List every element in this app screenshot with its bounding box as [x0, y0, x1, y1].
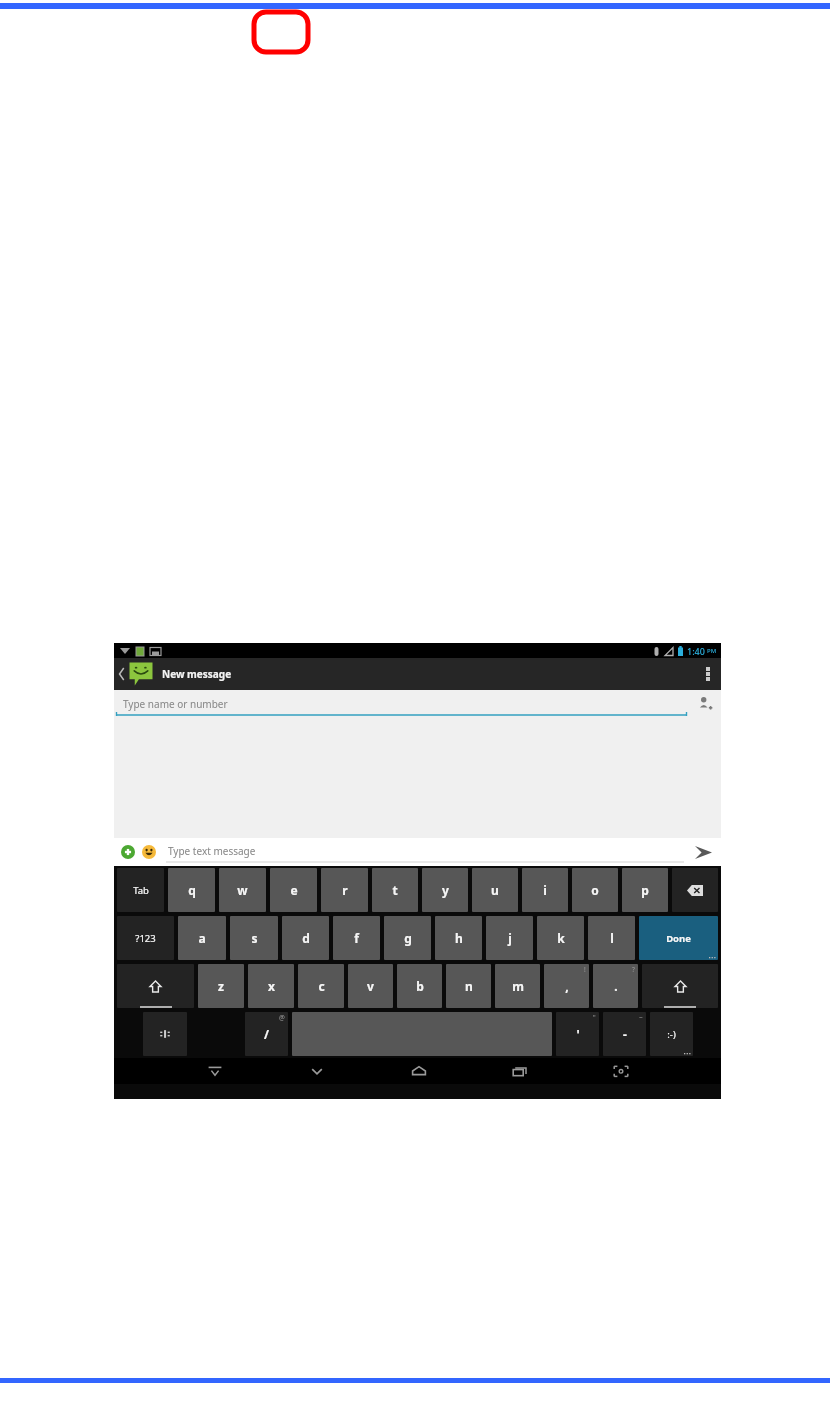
button[interactable]: ~	[603, 1012, 646, 1056]
staticText: g	[404, 930, 412, 946]
staticText: p	[641, 882, 649, 898]
staticText: f	[354, 930, 359, 946]
button[interactable]: o	[572, 868, 618, 912]
button[interactable]: h	[435, 916, 482, 960]
staticText: w	[237, 882, 248, 898]
button[interactable]: a	[178, 916, 226, 960]
staticText: PM	[707, 647, 717, 655]
button[interactable]: Recent apps	[469, 1058, 570, 1084]
button[interactable]: Shift	[117, 964, 194, 1008]
button[interactable]: ?123	[117, 916, 174, 960]
staticText: h	[455, 930, 463, 946]
button[interactable]: m	[495, 964, 540, 1008]
button[interactable]: z	[198, 964, 244, 1008]
staticText: t	[392, 882, 398, 898]
button[interactable]: r	[321, 868, 368, 912]
staticText: -	[623, 1026, 627, 1042]
staticText: n	[465, 978, 473, 994]
button[interactable]: Shift	[642, 964, 718, 1008]
button[interactable]: Voice input	[143, 1012, 187, 1056]
button[interactable]: x	[248, 964, 294, 1008]
staticText: 1:40	[687, 645, 705, 657]
button[interactable]: b	[397, 964, 442, 1008]
button[interactable]: Delete	[672, 868, 718, 912]
button[interactable]: l	[588, 916, 635, 960]
button[interactable]: n	[446, 964, 491, 1008]
button[interactable]: Tab	[117, 868, 164, 912]
button[interactable]: Screenshot	[570, 1058, 671, 1084]
button[interactable]: i	[522, 868, 568, 912]
staticText: Done	[666, 932, 691, 945]
staticText: u	[491, 882, 499, 898]
staticText: k	[557, 930, 565, 946]
staticText: b	[416, 978, 424, 994]
button[interactable]: q	[168, 868, 215, 912]
button[interactable]: t	[372, 868, 418, 912]
button[interactable]: Navigate up	[117, 661, 232, 687]
staticText: Type name or number	[123, 697, 228, 711]
button[interactable]: s	[230, 916, 278, 960]
button[interactable]: "	[556, 1012, 599, 1056]
staticText: Type text message	[168, 844, 256, 858]
button[interactable]: @	[245, 1012, 288, 1056]
button[interactable]: d	[282, 916, 329, 960]
staticText: z	[218, 978, 224, 994]
staticText: "	[593, 1013, 596, 1022]
button[interactable]: Add recipient	[689, 690, 721, 716]
staticText: j	[508, 930, 512, 946]
staticText: s	[251, 930, 258, 946]
button[interactable]: Home	[368, 1058, 469, 1084]
button[interactable]: Done	[639, 916, 718, 960]
staticText: ,	[565, 978, 569, 994]
staticText: New message	[162, 667, 232, 681]
button[interactable]: Send	[690, 840, 716, 864]
button[interactable]: Hide keyboard	[164, 1058, 266, 1084]
button[interactable]: y	[422, 868, 468, 912]
staticText: y	[442, 882, 449, 898]
staticText: ~	[639, 1013, 643, 1022]
button[interactable]: Attach	[119, 843, 137, 861]
button[interactable]: j	[486, 916, 533, 960]
staticText: c	[318, 978, 325, 994]
button[interactable]: :-)	[650, 1012, 693, 1056]
button[interactable]: Type text message	[166, 838, 684, 866]
button[interactable]: f	[333, 916, 380, 960]
staticText: /	[264, 1026, 269, 1042]
button[interactable]: Insert emoji	[140, 843, 158, 861]
button[interactable]: Back	[266, 1058, 368, 1084]
button[interactable]: Type name or number	[114, 690, 689, 716]
button[interactable]: More options	[695, 658, 721, 690]
button[interactable]: p	[622, 868, 668, 912]
button[interactable]: u	[472, 868, 518, 912]
staticText: a	[198, 930, 206, 946]
staticText: :-)	[667, 1028, 676, 1041]
staticText: ?123	[135, 932, 156, 945]
staticText: .	[614, 978, 618, 994]
button[interactable]: ?	[593, 964, 638, 1008]
staticText: r	[342, 882, 348, 898]
staticText: d	[302, 930, 310, 946]
staticText: @	[279, 1013, 285, 1022]
staticText: !	[584, 965, 586, 974]
staticText: v	[367, 978, 374, 994]
staticText: q	[188, 882, 196, 898]
staticText: l	[610, 930, 614, 946]
button[interactable]: !	[544, 964, 589, 1008]
staticText: e	[290, 882, 298, 898]
staticText: m	[512, 978, 524, 994]
button[interactable]: c	[298, 964, 344, 1008]
staticText: o	[591, 882, 599, 898]
button[interactable]: v	[348, 964, 393, 1008]
button[interactable]: g	[384, 916, 431, 960]
button[interactable]: w	[219, 868, 266, 912]
staticText: i	[543, 882, 547, 898]
button[interactable]: k	[537, 916, 584, 960]
staticText: ?	[632, 965, 635, 974]
staticText: Tab	[133, 884, 149, 897]
staticText: '	[576, 1026, 580, 1042]
button[interactable]: e	[270, 868, 317, 912]
staticText: x	[268, 978, 275, 994]
